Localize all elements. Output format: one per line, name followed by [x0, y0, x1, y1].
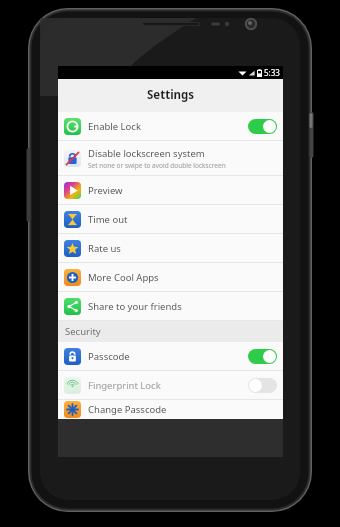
other: Disable lockscreen system: [64, 150, 81, 167]
button[interactable]: Preview: [58, 176, 283, 205]
button[interactable]: Toggle on: [248, 119, 277, 134]
staticText: Settings: [147, 87, 195, 103]
other: Enable Lock: [64, 118, 81, 135]
button[interactable]: Enable Lock: [58, 112, 283, 141]
staticText: Change Passcode: [88, 403, 167, 416]
staticText: Fingerprint Lock: [88, 379, 161, 392]
staticText: Rate us: [88, 242, 121, 255]
other: Preview: [64, 182, 81, 199]
button[interactable]: Time out: [58, 205, 283, 234]
button[interactable]: Disable lockscreen system: [58, 141, 283, 176]
other: More Cool Apps: [64, 269, 81, 286]
other: Rate us: [64, 240, 81, 257]
button[interactable]: Toggle off: [248, 378, 277, 393]
other: Share to your friends: [64, 298, 81, 315]
button[interactable]: More Cool Apps: [58, 263, 283, 292]
staticText: More Cool Apps: [88, 271, 159, 284]
button[interactable]: Passcode: [58, 342, 283, 371]
other: Passcode: [64, 348, 81, 365]
staticText: Time out: [88, 213, 128, 226]
button[interactable]: Change Passcode: [58, 400, 283, 419]
staticText: Set none or swipe to avoid double locksc…: [88, 161, 226, 170]
button[interactable]: Share to your friends: [58, 292, 283, 321]
other: Time out: [64, 211, 81, 228]
button[interactable]: Rate us: [58, 234, 283, 263]
other: Change Passcode: [64, 401, 81, 418]
staticText: Disable lockscreen system: [88, 147, 205, 160]
other: Fingerprint Lock: [64, 377, 81, 394]
button[interactable]: Toggle on: [248, 349, 277, 364]
staticText: Security: [65, 325, 101, 338]
staticText: Passcode: [88, 350, 130, 363]
staticText: 5:33: [264, 67, 280, 78]
staticText: Preview: [88, 184, 123, 197]
staticText: Share to your friends: [88, 300, 182, 313]
staticText: Enable Lock: [88, 120, 141, 133]
button[interactable]: Fingerprint Lock: [58, 371, 283, 400]
